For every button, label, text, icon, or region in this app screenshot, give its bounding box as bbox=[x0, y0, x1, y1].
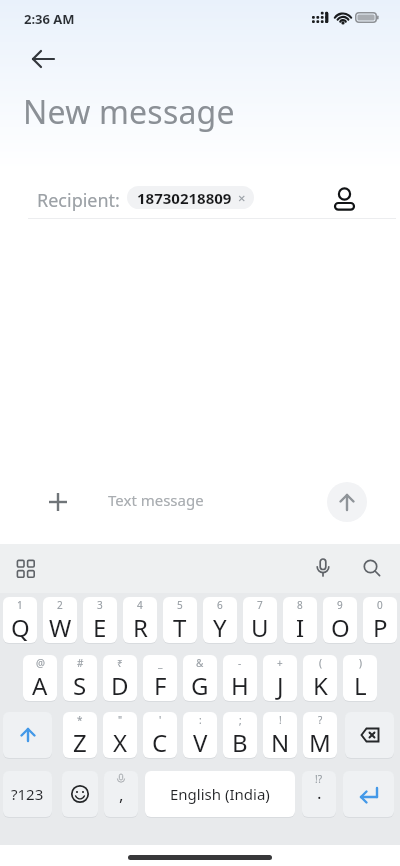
staticText: * bbox=[77, 713, 83, 727]
staticText: N bbox=[271, 726, 290, 758]
staticText: Y bbox=[213, 611, 227, 643]
staticText: , bbox=[119, 783, 124, 806]
staticText: # bbox=[77, 656, 84, 670]
button[interactable]: + bbox=[263, 655, 297, 701]
staticText: B bbox=[232, 726, 248, 758]
button[interactable] bbox=[343, 771, 394, 817]
staticText: X bbox=[113, 726, 128, 758]
staticText: ' bbox=[159, 713, 162, 727]
button[interactable]: ₹ bbox=[103, 655, 137, 701]
staticText: 3 bbox=[97, 598, 103, 612]
staticText: L bbox=[354, 669, 367, 701]
staticText: 2 bbox=[57, 598, 63, 612]
button[interactable] bbox=[327, 482, 367, 522]
staticText: 1 bbox=[17, 598, 23, 612]
button[interactable]: English (India) bbox=[145, 771, 295, 817]
staticText: " bbox=[118, 713, 123, 727]
staticText: S bbox=[73, 669, 87, 701]
staticText: . bbox=[317, 781, 322, 804]
button[interactable]: @ bbox=[23, 655, 57, 701]
button[interactable]: 1 bbox=[3, 597, 37, 643]
staticText: ? bbox=[318, 713, 323, 727]
staticText: New message bbox=[23, 90, 235, 134]
staticText: Recipient: bbox=[37, 188, 120, 213]
staticText: 6 bbox=[217, 598, 223, 612]
button[interactable]: 9 bbox=[323, 597, 357, 643]
staticText: 2:36 AM bbox=[24, 10, 75, 28]
staticText: W bbox=[49, 611, 72, 643]
button[interactable]: # bbox=[63, 655, 97, 701]
button[interactable] bbox=[330, 182, 360, 214]
button[interactable]: 5 bbox=[163, 597, 197, 643]
button[interactable]: !? bbox=[302, 771, 336, 817]
button[interactable]: 18730218809 bbox=[127, 186, 254, 209]
button[interactable]: 4 bbox=[123, 597, 157, 643]
staticText: Text message bbox=[108, 490, 204, 510]
button[interactable]: 7 bbox=[243, 597, 277, 643]
button[interactable]: ) bbox=[343, 655, 377, 701]
staticText: _ bbox=[158, 656, 163, 670]
button[interactable]: ; bbox=[223, 712, 257, 758]
button[interactable]: ?123 bbox=[3, 771, 52, 817]
staticText: - bbox=[238, 656, 242, 670]
staticText: H bbox=[231, 669, 249, 701]
button[interactable]: 6 bbox=[203, 597, 237, 643]
button[interactable]: 0 bbox=[363, 597, 397, 643]
staticText: ! bbox=[279, 713, 282, 727]
button[interactable] bbox=[62, 771, 98, 817]
staticText: I bbox=[296, 611, 305, 643]
staticText: 0 bbox=[377, 598, 383, 612]
staticText: C bbox=[152, 726, 168, 758]
staticText: ) bbox=[359, 656, 362, 670]
staticText: English (India) bbox=[170, 784, 270, 804]
staticText: 18730218809 bbox=[137, 188, 232, 208]
button[interactable]: " bbox=[103, 712, 137, 758]
staticText: ; bbox=[239, 713, 242, 727]
button[interactable] bbox=[44, 488, 72, 516]
staticText: J bbox=[277, 669, 284, 701]
staticText: ( bbox=[319, 656, 322, 670]
staticText: + bbox=[277, 656, 283, 670]
staticText: R bbox=[133, 611, 148, 643]
button[interactable]: ! bbox=[263, 712, 297, 758]
staticText: 7 bbox=[257, 598, 263, 612]
button[interactable]: ( bbox=[303, 655, 337, 701]
staticText: : bbox=[199, 713, 202, 727]
button[interactable] bbox=[311, 556, 335, 580]
staticText: M bbox=[309, 726, 331, 758]
staticText: ₹ bbox=[117, 656, 123, 670]
button[interactable]: * bbox=[63, 712, 97, 758]
button[interactable] bbox=[3, 712, 52, 758]
staticText: O bbox=[331, 611, 350, 643]
staticText: 4 bbox=[137, 598, 143, 612]
staticText: P bbox=[373, 611, 388, 643]
staticText: × bbox=[238, 189, 246, 207]
staticText: !? bbox=[315, 772, 323, 786]
button[interactable]: 3 bbox=[83, 597, 117, 643]
staticText: K bbox=[313, 669, 328, 701]
button[interactable] bbox=[345, 712, 394, 758]
button[interactable] bbox=[360, 556, 384, 580]
button[interactable] bbox=[24, 48, 60, 72]
staticText: 9 bbox=[337, 598, 343, 612]
button[interactable]: _ bbox=[143, 655, 177, 701]
button[interactable] bbox=[14, 557, 38, 581]
staticText: Z bbox=[73, 726, 87, 758]
staticText: V bbox=[193, 726, 208, 758]
staticText: G bbox=[191, 669, 209, 701]
button[interactable]: ? bbox=[303, 712, 337, 758]
button[interactable]: : bbox=[183, 712, 217, 758]
staticText: A bbox=[32, 669, 48, 701]
staticText: D bbox=[111, 669, 129, 701]
button[interactable]: - bbox=[223, 655, 257, 701]
button[interactable]: 2 bbox=[43, 597, 77, 643]
button[interactable]: ' bbox=[143, 712, 177, 758]
button[interactable]: , bbox=[104, 771, 138, 817]
button[interactable]: & bbox=[183, 655, 217, 701]
staticText: 8 bbox=[297, 598, 303, 612]
staticText: ?123 bbox=[11, 784, 44, 804]
staticText: E bbox=[93, 611, 107, 643]
button[interactable]: 8 bbox=[283, 597, 317, 643]
staticText: @ bbox=[36, 656, 45, 670]
staticText: 5 bbox=[177, 598, 183, 612]
